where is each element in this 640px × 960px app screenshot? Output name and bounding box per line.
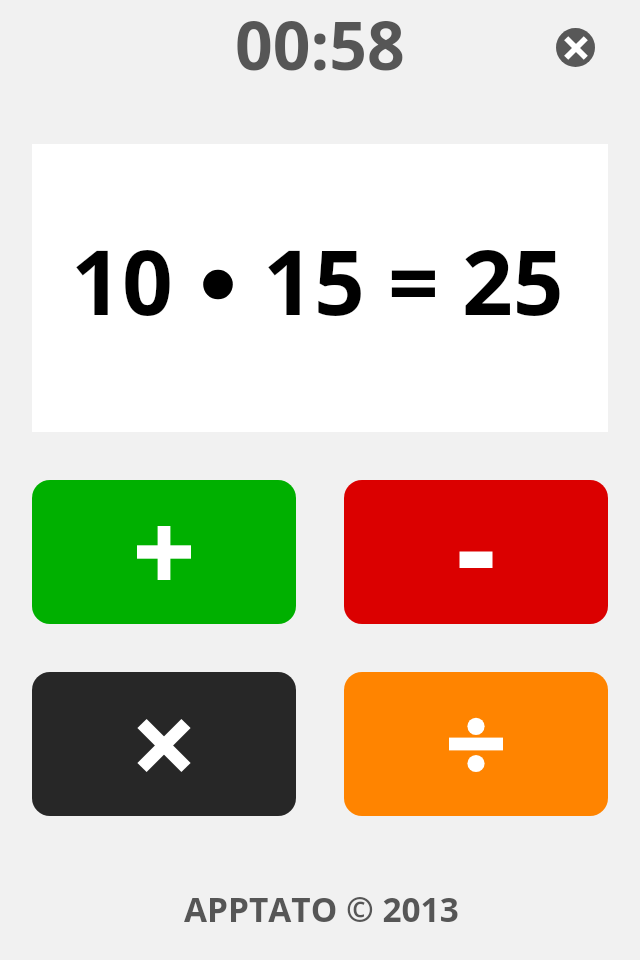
- button[interactable]: Subtract: [344, 480, 608, 624]
- button[interactable]: Add: [32, 480, 296, 624]
- button[interactable]: Close: [556, 28, 595, 67]
- staticText: APPTATO © 2013: [184, 886, 459, 931]
- staticText: 10: [71, 220, 173, 341]
- button[interactable]: Divide: [344, 672, 608, 816]
- staticText: 15 = 25: [263, 220, 564, 341]
- staticText: 00:58: [235, 0, 405, 89]
- button[interactable]: Multiply: [32, 672, 296, 816]
